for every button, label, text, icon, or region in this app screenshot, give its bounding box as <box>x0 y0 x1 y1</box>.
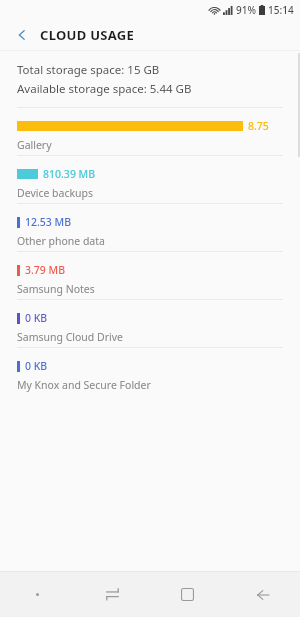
staticText: 0 KB <box>25 311 48 325</box>
staticText: 12.53 MB <box>25 215 72 229</box>
button[interactable]: 0 KB <box>0 348 300 395</box>
button[interactable]: Hide navigation bar <box>0 572 75 617</box>
button[interactable]: 810.39 MB <box>0 156 300 203</box>
button[interactable]: Navigate up <box>8 21 36 49</box>
button[interactable]: Recent apps <box>75 572 150 617</box>
staticText: My Knox and Secure Folder <box>17 378 151 392</box>
staticText: 0 KB <box>25 359 48 373</box>
staticText: CLOUD USAGE <box>40 26 135 44</box>
button[interactable]: 12.53 MB <box>0 204 300 251</box>
staticText: Device backups <box>17 186 94 200</box>
staticText: 15:14 <box>268 3 294 17</box>
staticText: Samsung Cloud Drive <box>17 330 124 344</box>
staticText: 91% <box>236 3 256 17</box>
button[interactable]: Home <box>150 572 225 617</box>
button[interactable]: 8.75 GB <box>0 108 300 155</box>
staticText: Available storage space: 5.44 GB <box>17 81 192 97</box>
staticText: 3.79 MB <box>25 263 66 277</box>
button[interactable]: 3.79 MB <box>0 252 300 299</box>
staticText: Other phone data <box>17 234 105 248</box>
staticText: Total storage space: 15 GB <box>17 62 160 78</box>
staticText: Gallery <box>17 138 52 152</box>
staticText: 810.39 MB <box>43 167 96 181</box>
staticText: 8.75 GB <box>248 119 283 133</box>
button[interactable]: 0 KB <box>0 300 300 347</box>
staticText: Samsung Notes <box>17 282 95 296</box>
button[interactable]: Back <box>225 572 300 617</box>
